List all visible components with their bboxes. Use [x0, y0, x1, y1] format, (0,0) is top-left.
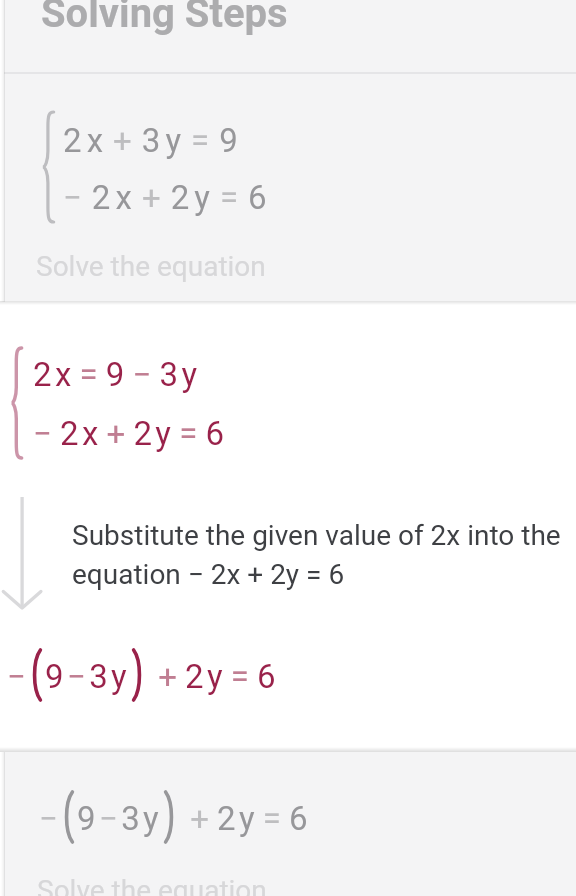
- staticText: Substitute the given value of 2x into th…: [72, 519, 561, 591]
- staticText: 9 − 3 y: [45, 657, 127, 696]
- staticText: Solve the equation: [37, 874, 267, 896]
- staticText: − 2 x + 2 y = 6: [33, 414, 224, 453]
- staticText: 9 − 3 y: [77, 799, 159, 838]
- staticText: −: [39, 799, 58, 838]
- staticText: + 2 y = 6: [182, 799, 308, 838]
- staticText: −: [7, 657, 26, 696]
- button[interactable]: Solving Steps: [4, 0, 576, 301]
- staticText: 2 x = 9 − 3 y: [33, 355, 198, 394]
- staticText: − 2 x + 2 y = 6: [63, 178, 268, 217]
- staticText: Solving Steps: [41, 0, 288, 37]
- staticText: 2 x + 3 y = 9: [63, 121, 239, 160]
- button[interactable]: −: [4, 752, 576, 896]
- staticText: Solve the equation: [36, 250, 266, 283]
- staticText: + 2 y = 6: [150, 657, 276, 696]
